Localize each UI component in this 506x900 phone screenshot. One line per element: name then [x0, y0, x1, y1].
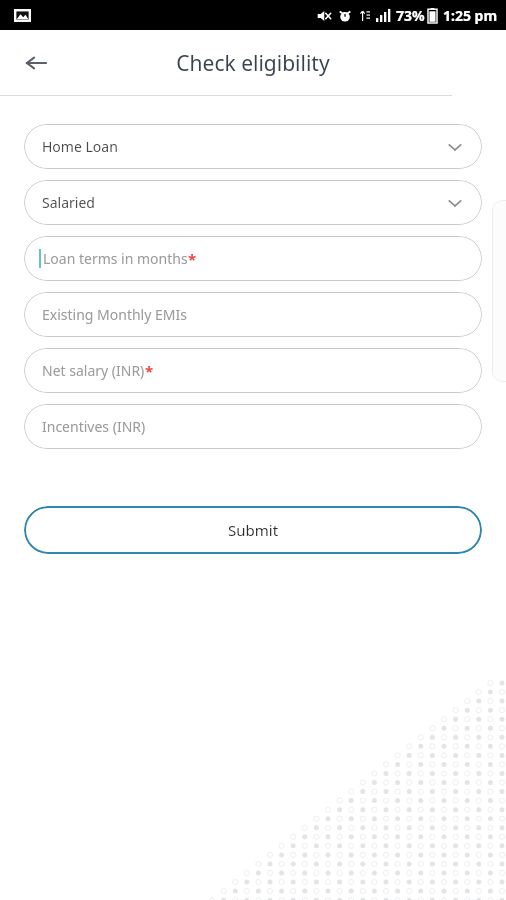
- button[interactable]: Salaried: [24, 180, 482, 225]
- button[interactable]: Loan terms in months: [24, 236, 482, 281]
- staticText: Existing Monthly EMIs: [42, 305, 187, 324]
- staticText: Net salary (INR): [42, 361, 145, 380]
- staticText: *: [145, 361, 154, 381]
- staticText: Salaried: [42, 193, 95, 212]
- button[interactable]: Home Loan: [24, 124, 482, 169]
- staticText: Check eligibility: [176, 49, 330, 78]
- staticText: 73%: [396, 6, 425, 25]
- button[interactable]: Net salary (INR): [24, 348, 482, 393]
- button[interactable]: Submit: [24, 506, 482, 554]
- staticText: Incentives (INR): [42, 417, 146, 436]
- staticText: 1:25 pm: [443, 6, 498, 25]
- staticText: Submit: [228, 520, 279, 540]
- staticText: Loan terms in months: [43, 249, 188, 268]
- staticText: Home Loan: [42, 137, 118, 156]
- button[interactable]: Existing Monthly EMIs: [24, 292, 482, 337]
- button[interactable]: Incentives (INR): [24, 404, 482, 449]
- staticText: *: [188, 249, 197, 269]
- button[interactable]: Back: [12, 39, 60, 87]
